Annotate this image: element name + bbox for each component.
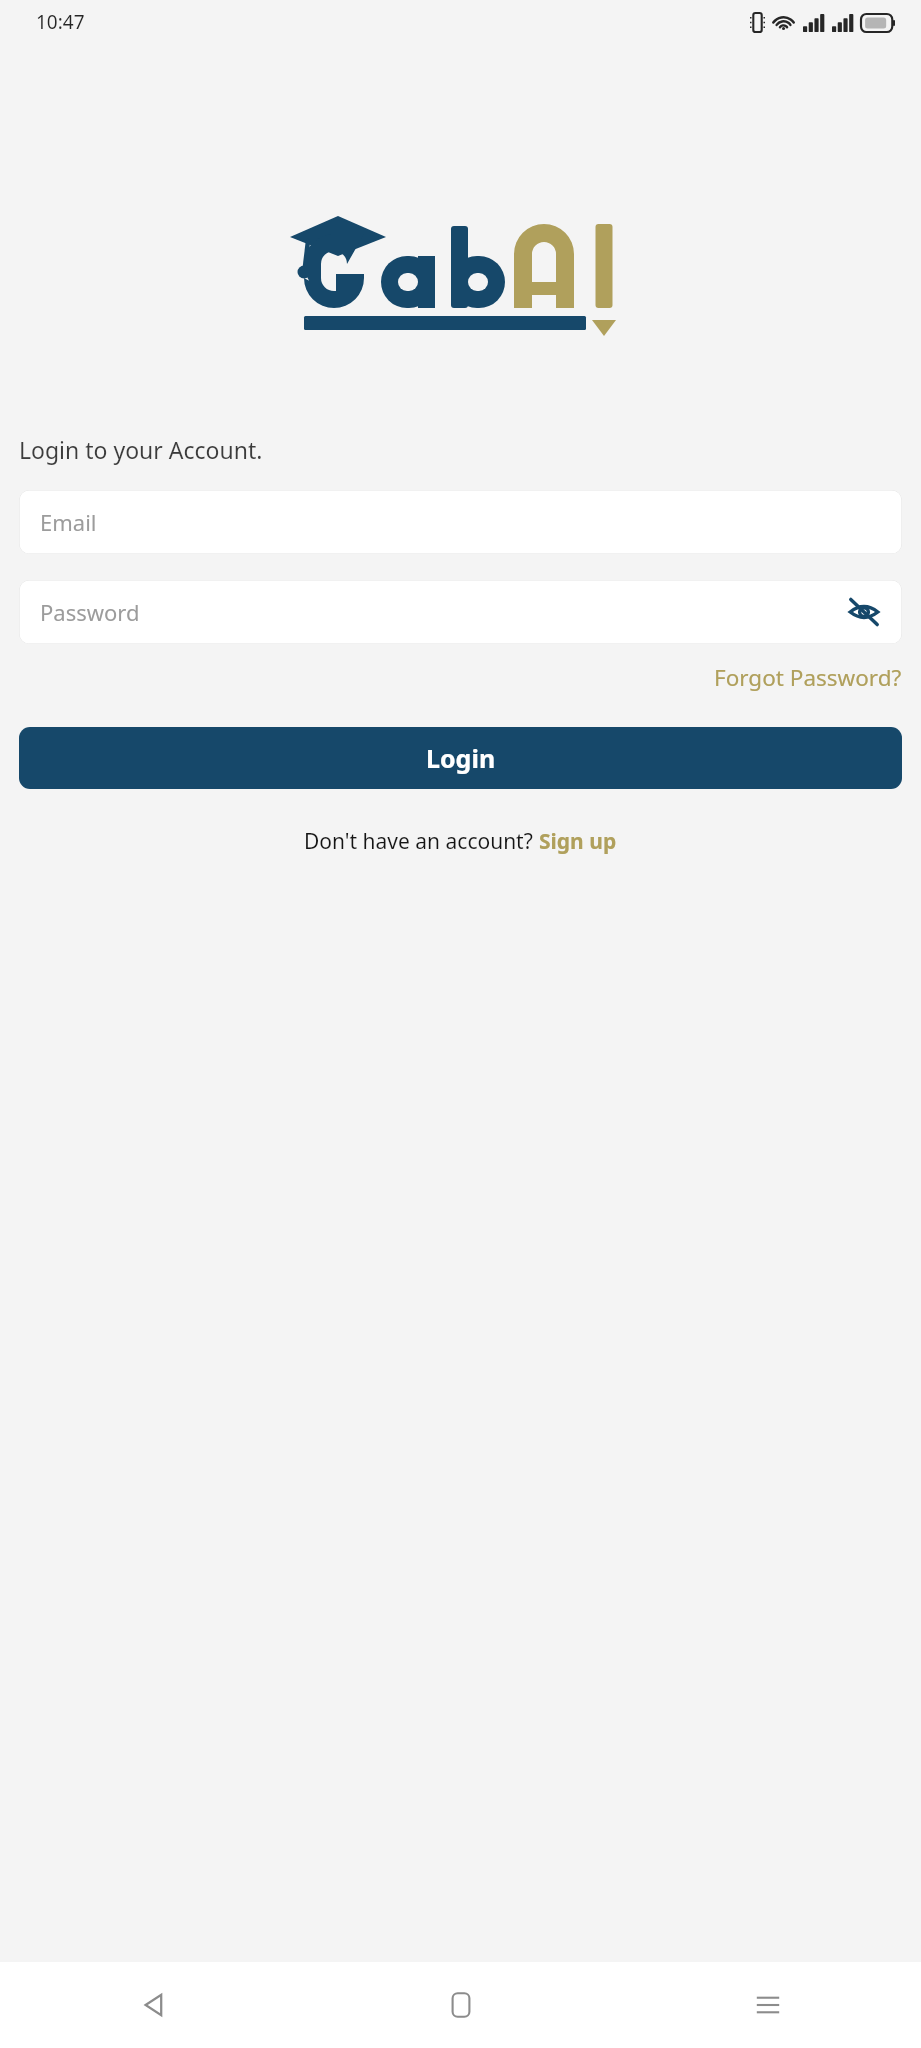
staticText: Password — [40, 597, 140, 627]
button[interactable]: Sign up — [539, 827, 617, 856]
button[interactable]: Forgot Password? — [695, 656, 921, 699]
staticText: 10:47 — [36, 9, 85, 35]
button[interactable]: Back — [0, 1962, 307, 2048]
button[interactable]: Home — [307, 1962, 614, 2048]
staticText: Forgot Password? — [714, 662, 902, 693]
button[interactable]: Show password — [838, 586, 890, 638]
staticText: Login to your Account. — [19, 434, 263, 465]
staticText: Email — [40, 507, 97, 537]
button[interactable]: Password — [19, 580, 902, 644]
button[interactable]: Login — [19, 727, 902, 789]
staticText: Login — [426, 741, 496, 775]
button[interactable]: Recent apps — [614, 1962, 921, 2048]
button[interactable]: Email — [19, 490, 902, 554]
staticText: Sign up — [539, 827, 617, 856]
staticText: Don't have an account? — [304, 827, 539, 856]
